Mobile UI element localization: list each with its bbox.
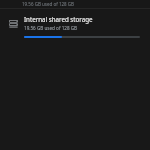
staticText: Internal shared storage [24,15,93,23]
other: Internal shared storage [8,18,18,28]
button[interactable]: 19.56 GB used of 128 GB [0,0,150,8]
button[interactable]: Internal shared storage [0,9,150,36]
staticText: 19.56 GB used of 128 GB [22,1,74,7]
staticText: 19.56 GB used of 128 GB [24,25,78,31]
